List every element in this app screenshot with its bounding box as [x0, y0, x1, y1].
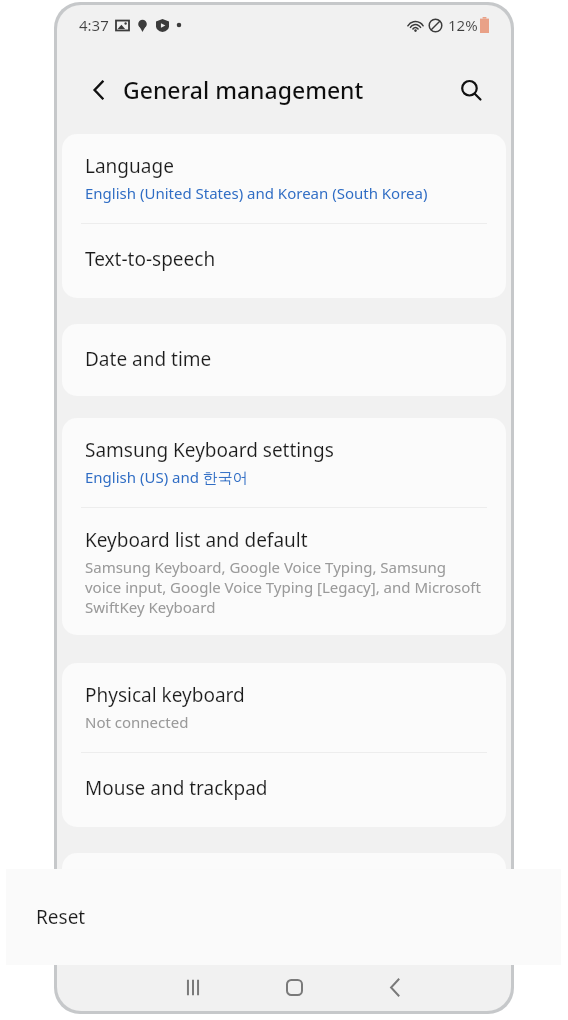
staticText: Language — [85, 153, 174, 179]
staticText: Reset — [36, 904, 86, 930]
button[interactable]: Text-to-speech — [62, 224, 506, 298]
button[interactable]: Physical keyboard — [62, 663, 506, 752]
staticText: Date and time — [85, 346, 212, 372]
button[interactable]: Back — [77, 68, 121, 112]
button[interactable]: Home — [271, 964, 317, 1010]
button[interactable]: Reset — [6, 869, 561, 965]
button[interactable]: Back — [372, 964, 418, 1010]
staticText: Samsung Keyboard, Google Voice Typing, S… — [85, 557, 482, 617]
staticText: Mouse and trackpad — [85, 775, 268, 801]
button[interactable]: Passwords and autofill — [62, 853, 506, 925]
staticText: Not connected — [85, 712, 189, 732]
staticText: Samsung Keyboard settings — [85, 437, 334, 463]
staticText: 12% — [448, 15, 478, 35]
button[interactable]: Date and time — [62, 324, 506, 396]
staticText: English (United States) and Korean (Sout… — [85, 183, 428, 203]
button[interactable]: Mouse and trackpad — [62, 753, 506, 827]
staticText: Keyboard list and default — [85, 527, 308, 553]
button[interactable]: Language — [62, 134, 506, 223]
staticText: English (US) and 한국어 — [85, 467, 248, 487]
button[interactable]: Search — [449, 68, 493, 112]
button[interactable]: Recent apps — [170, 964, 216, 1010]
button[interactable]: Samsung Keyboard settings — [62, 418, 506, 507]
button[interactable]: Keyboard list and default — [62, 508, 506, 635]
staticText: Text-to-speech — [85, 246, 216, 272]
staticText: Physical keyboard — [85, 682, 245, 708]
staticText: General management — [123, 74, 364, 105]
staticText: 4:37 — [79, 15, 109, 35]
